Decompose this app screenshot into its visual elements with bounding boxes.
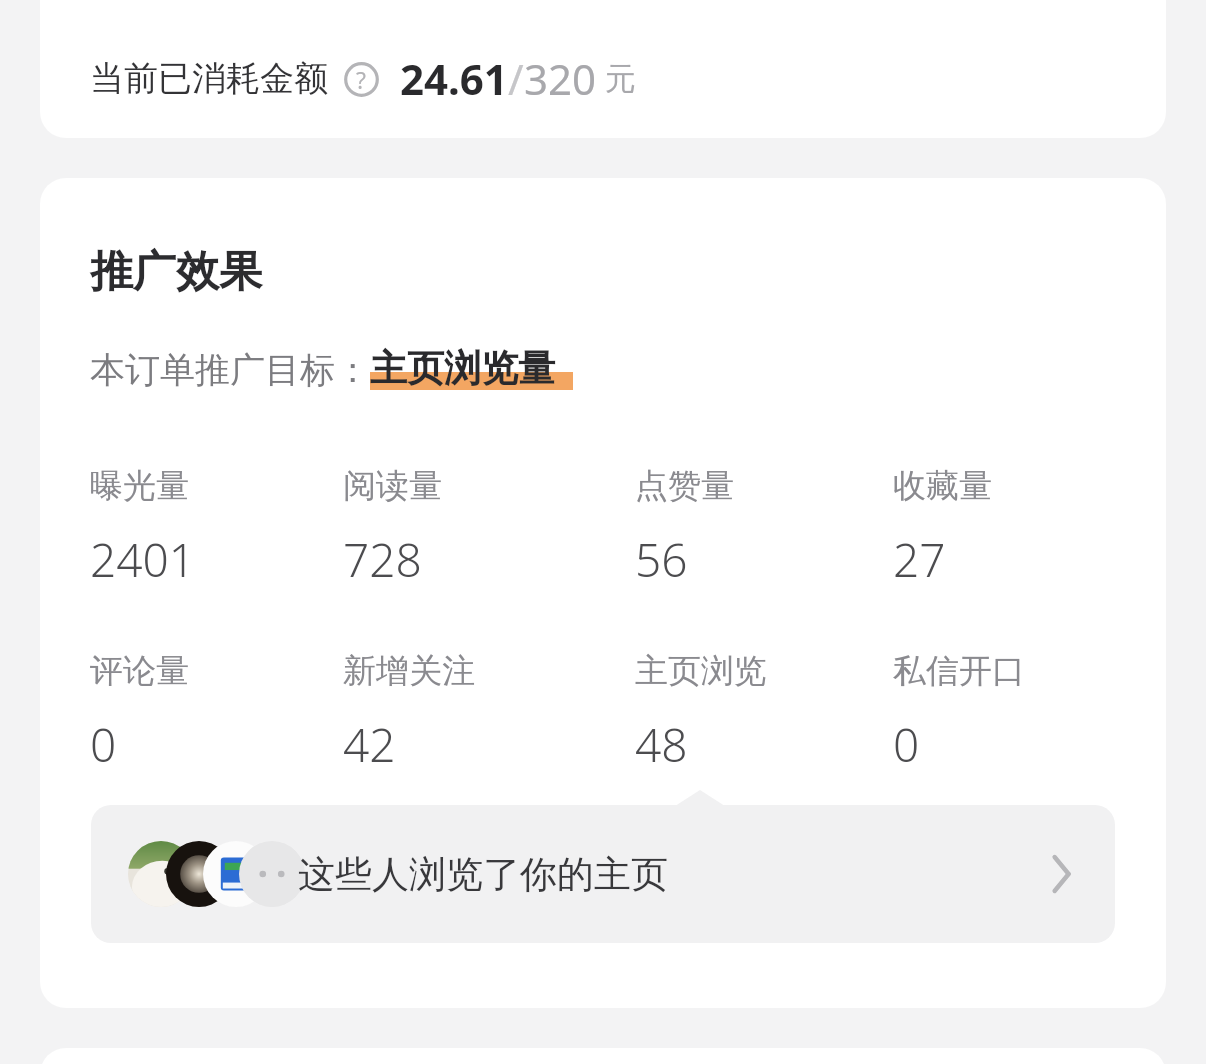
staticText: 56 (635, 528, 688, 591)
staticText: 42 (343, 713, 396, 776)
staticText: 阅读量 (343, 465, 442, 507)
staticText: 728 (343, 528, 422, 591)
staticText: / (508, 50, 524, 107)
staticText: 0 (893, 713, 920, 776)
staticText: 主页浏览 (635, 650, 767, 692)
staticText: 320 (524, 50, 597, 107)
staticText: 当前已消耗金额 (90, 57, 328, 100)
button[interactable]: 这些人浏览了你的主页 (91, 805, 1115, 943)
staticText: 推广效果 (90, 245, 262, 299)
staticText: 本订单推广目标： (90, 348, 370, 392)
staticText: 0 (90, 713, 117, 776)
staticText: 新增关注 (343, 650, 475, 692)
staticText: 主页浏览量 (370, 345, 555, 392)
staticText: 评论量 (90, 650, 189, 692)
staticText: 私信开口 (893, 650, 1025, 692)
staticText: 收藏量 (893, 465, 992, 507)
button[interactable]: 消耗金额说明 (342, 60, 380, 98)
staticText: 元 (605, 59, 636, 98)
staticText: 2401 (90, 528, 196, 591)
staticText: ? (356, 64, 366, 95)
staticText: 点赞量 (635, 465, 734, 507)
staticText: 这些人浏览了你的主页 (298, 851, 668, 898)
staticText: 48 (635, 713, 688, 776)
staticText: 27 (893, 528, 946, 591)
staticText: 曝光量 (90, 465, 189, 507)
staticText: 24.61 (400, 50, 508, 107)
